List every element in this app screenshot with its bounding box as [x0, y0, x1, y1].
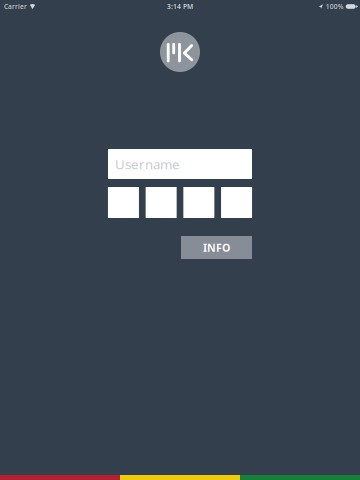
button[interactable]: PIN digit — [183, 187, 214, 218]
button[interactable]: INFO — [181, 236, 252, 259]
staticText: 100% — [326, 2, 344, 11]
staticText: INFO — [203, 240, 230, 255]
staticText: Username — [115, 155, 180, 173]
button[interactable]: Username — [108, 149, 252, 179]
staticText: 3:14 PM — [167, 2, 193, 11]
staticText: Carrier — [4, 2, 27, 11]
button[interactable]: PIN digit — [146, 187, 177, 218]
